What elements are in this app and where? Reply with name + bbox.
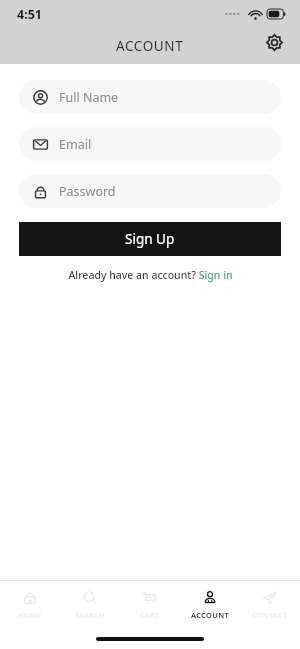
staticText: SEARCH	[75, 610, 105, 620]
button[interactable]: Email	[19, 127, 281, 161]
staticText: ACCOUNT	[116, 37, 184, 55]
button[interactable]: Settings	[256, 24, 292, 60]
staticText: CONTACT	[252, 610, 288, 620]
button[interactable]: CONTACT	[240, 581, 300, 628]
staticText: Full Name	[59, 89, 119, 106]
button[interactable]: Full Name	[19, 80, 281, 114]
button[interactable]: Password	[19, 174, 281, 208]
staticText: 4:51	[17, 6, 42, 23]
staticText: CART	[140, 610, 160, 620]
button[interactable]: HOME	[0, 581, 60, 628]
staticText: Email	[59, 136, 92, 153]
button[interactable]: SEARCH	[60, 581, 120, 628]
button[interactable]: Already have an account? Sign in	[68, 268, 233, 282]
staticText: Sign Up	[125, 230, 175, 248]
staticText: HOME	[18, 610, 42, 620]
staticText: ACCOUNT	[191, 610, 229, 620]
button[interactable]: Sign Up	[19, 222, 281, 256]
staticText: Password	[59, 183, 116, 200]
staticText: Already have an account? Sign in	[68, 268, 233, 282]
button[interactable]: ACCOUNT	[180, 581, 240, 628]
button[interactable]: CART	[120, 581, 180, 628]
